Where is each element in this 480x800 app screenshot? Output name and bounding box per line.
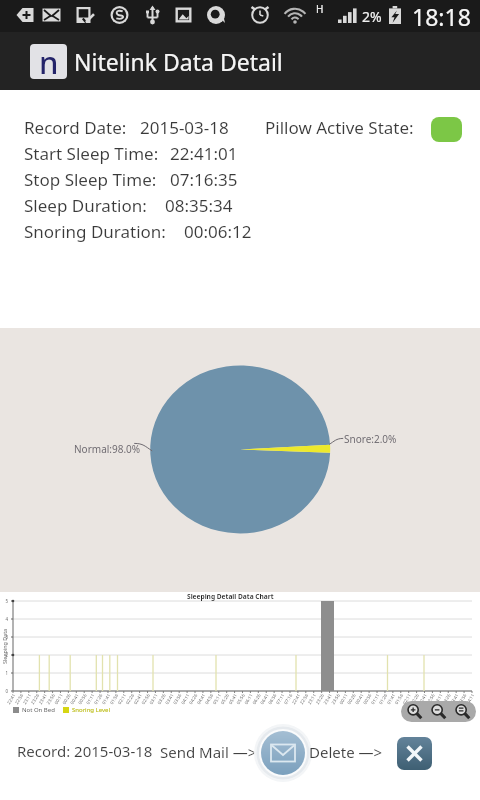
staticText: 22:41:01 (170, 142, 238, 165)
button[interactable]: Reset zoom (454, 703, 471, 720)
staticText: H (316, 2, 324, 16)
staticText: 2015-03-18 (140, 116, 229, 139)
staticText: 07:16:35 (170, 168, 238, 191)
staticText: Pillow Active State: (265, 116, 414, 139)
staticText: n (39, 44, 59, 76)
staticText: 08:35:34 (165, 194, 233, 217)
staticText: 18:18 (412, 1, 471, 32)
staticText: Sleeping Detail Data Chart (187, 592, 274, 601)
button[interactable]: Zoom in (406, 703, 423, 720)
button[interactable]: Send Mail —> (160, 722, 315, 784)
staticText: Stop Sleep Time: (24, 168, 157, 191)
staticText: Snoring Duration: (24, 220, 166, 243)
staticText: Snore:2.0% (344, 432, 397, 446)
staticText: Record Date: (24, 116, 127, 139)
staticText: 2% (362, 7, 382, 26)
staticText: Delete —> (309, 742, 383, 762)
button[interactable]: n (30, 44, 283, 79)
staticText: Not On Bed (22, 706, 55, 714)
button[interactable]: Delete —> (309, 722, 432, 784)
staticText: 00:06:12 (184, 220, 252, 243)
staticText: Send Mail —> (160, 742, 257, 762)
staticText: Record: 2015-03-18 (17, 741, 153, 761)
staticText: Normal:98.0% (74, 442, 141, 456)
staticText: Snoring Level (72, 706, 111, 714)
staticText: Sleep Duration: (24, 194, 147, 217)
other: Send Mail (254, 724, 312, 782)
staticText: Start Sleep Time: (24, 142, 159, 165)
other: Delete (397, 737, 432, 770)
button[interactable]: Pillow Active State (431, 117, 462, 142)
staticText: Nitelink Data Detail (74, 46, 283, 77)
button[interactable]: Zoom out (430, 703, 447, 720)
